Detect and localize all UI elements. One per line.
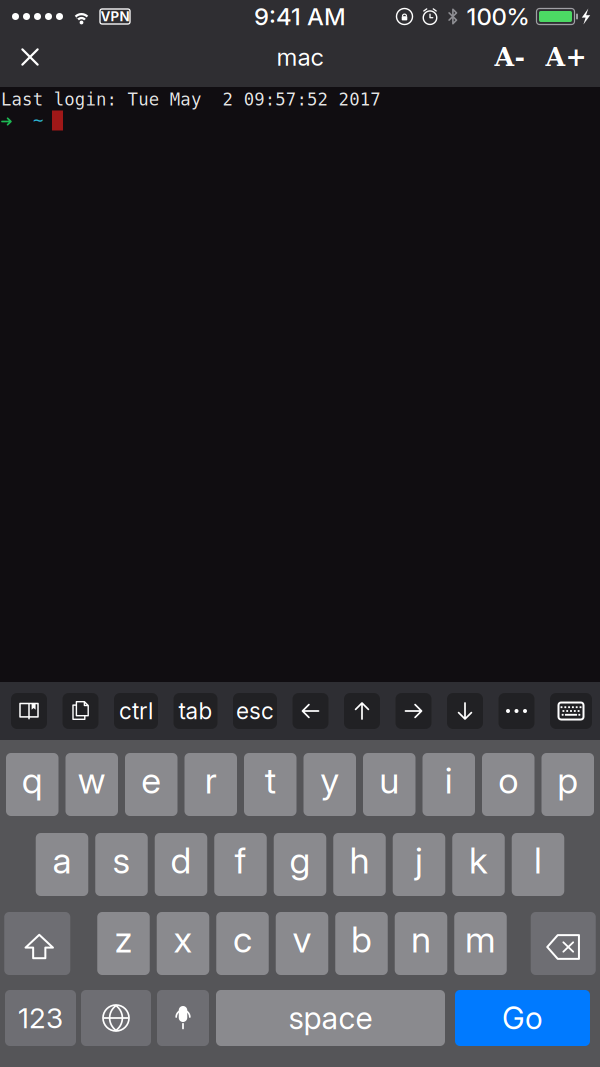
button[interactable]: x	[157, 912, 209, 975]
staticText: j	[415, 839, 423, 882]
button[interactable]: esc	[233, 693, 277, 729]
staticText: w	[78, 759, 106, 802]
staticText: f	[234, 839, 246, 882]
button[interactable]: Next keyboard	[81, 990, 151, 1046]
button[interactable]: d	[155, 833, 207, 896]
button[interactable]: tab	[173, 693, 217, 729]
staticText: s	[112, 839, 130, 882]
button[interactable]: n	[395, 912, 447, 975]
staticText: A+	[545, 42, 586, 72]
button[interactable]: u	[363, 753, 415, 816]
button[interactable]: y	[303, 753, 356, 816]
button[interactable]: Down	[447, 693, 483, 729]
button[interactable]: h	[333, 833, 386, 896]
button[interactable]: Close	[8, 30, 52, 84]
staticText: 123	[18, 1001, 63, 1035]
button[interactable]: v	[276, 912, 328, 975]
button[interactable]: Increase font size	[539, 30, 593, 84]
button[interactable]: o	[482, 753, 534, 816]
staticText: Go	[502, 999, 543, 1036]
button[interactable]: j	[393, 833, 445, 896]
staticText: Last login: Tue May 2 09:57:52 2017	[1, 89, 380, 110]
staticText: ctrl	[119, 697, 153, 725]
staticText: o	[498, 759, 518, 802]
staticText: a	[52, 839, 71, 882]
button[interactable]: 123	[5, 990, 76, 1046]
button[interactable]: Shift	[4, 912, 70, 975]
button[interactable]: a	[36, 833, 88, 896]
button[interactable]: q	[6, 753, 58, 816]
staticText: k	[469, 839, 488, 882]
button[interactable]: Snippets	[11, 693, 47, 729]
button[interactable]: b	[335, 912, 388, 975]
button[interactable]: Right	[395, 693, 431, 729]
button[interactable]: Hide keyboard	[550, 693, 592, 729]
staticText: b	[351, 918, 372, 961]
button[interactable]: i	[422, 753, 475, 816]
button[interactable]: g	[274, 833, 326, 896]
staticText: ~	[33, 110, 43, 131]
button[interactable]: Decrease font size	[483, 30, 537, 84]
staticText: 9:41 AM	[254, 2, 346, 31]
staticText: e	[141, 759, 161, 802]
button[interactable]: p	[541, 753, 594, 816]
staticText: space	[288, 999, 372, 1036]
button[interactable]: c	[216, 912, 269, 975]
button[interactable]: Up	[344, 693, 380, 729]
staticText: l	[534, 839, 542, 882]
staticText: tab	[178, 697, 212, 725]
button[interactable]: Paste	[62, 693, 98, 729]
button[interactable]: ctrl	[114, 693, 158, 729]
button[interactable]: t	[244, 753, 296, 816]
button[interactable]: e	[125, 753, 177, 816]
staticText: VPN	[100, 8, 129, 24]
staticText: h	[349, 839, 369, 882]
staticText: v	[292, 918, 311, 961]
staticText: d	[170, 839, 191, 882]
button[interactable]: k	[452, 833, 505, 896]
button[interactable]: l	[512, 833, 564, 896]
button[interactable]: Go	[455, 990, 590, 1046]
staticText: t	[265, 759, 276, 802]
button[interactable]: More	[498, 693, 534, 729]
staticText: c	[233, 918, 252, 961]
staticText: n	[411, 918, 431, 961]
button[interactable]: w	[65, 753, 118, 816]
staticText: g	[289, 839, 310, 882]
staticText: p	[557, 759, 578, 802]
staticText: r	[205, 759, 217, 802]
staticText: q	[22, 759, 43, 802]
button[interactable]: m	[454, 912, 507, 975]
button[interactable]: s	[95, 833, 148, 896]
staticText: z	[114, 918, 132, 961]
staticText: u	[379, 759, 399, 802]
button[interactable]: space	[216, 990, 445, 1046]
staticText: esc	[236, 697, 274, 725]
staticText: x	[173, 918, 192, 961]
staticText: y	[320, 759, 339, 802]
staticText: 100%	[466, 2, 529, 31]
button[interactable]: f	[214, 833, 267, 896]
staticText: mac	[276, 42, 323, 71]
button[interactable]: Left	[292, 693, 328, 729]
staticText: A-	[494, 42, 525, 72]
staticText: i	[445, 759, 453, 802]
button[interactable]: r	[184, 753, 237, 816]
staticText: m	[465, 918, 496, 961]
button[interactable]: z	[97, 912, 150, 975]
button[interactable]: Delete	[531, 912, 596, 975]
button[interactable]: Dictate	[157, 990, 209, 1046]
